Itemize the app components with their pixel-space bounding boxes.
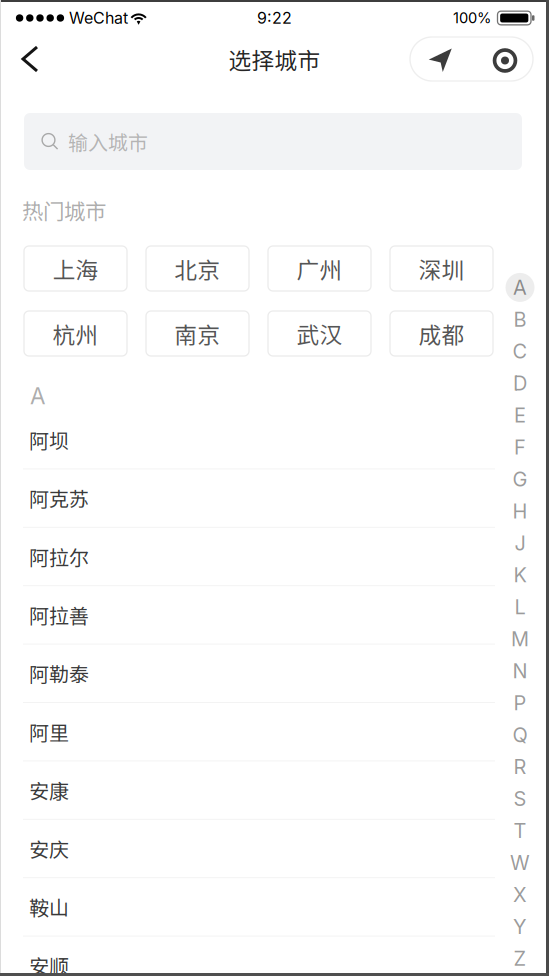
staticText: A bbox=[30, 382, 45, 410]
button[interactable]: 武汉 bbox=[268, 311, 371, 356]
button[interactable]: K bbox=[505, 559, 535, 591]
button[interactable]: 杭州 bbox=[24, 311, 127, 356]
staticText: 选择城市 bbox=[228, 43, 320, 75]
staticText: 安康 bbox=[29, 776, 69, 805]
staticText: A bbox=[513, 275, 527, 299]
staticText: T bbox=[513, 819, 526, 843]
staticText: F bbox=[514, 435, 526, 459]
button[interactable]: 广州 bbox=[268, 246, 371, 291]
staticText: P bbox=[513, 691, 526, 715]
staticText: 阿里 bbox=[29, 717, 69, 746]
button[interactable]: C bbox=[505, 335, 535, 367]
button[interactable]: X bbox=[505, 879, 535, 911]
button[interactable]: More options bbox=[474, 38, 536, 82]
button[interactable]: 阿克苏 bbox=[23, 469, 495, 528]
staticText: L bbox=[514, 595, 525, 619]
staticText: 阿拉尔 bbox=[29, 542, 89, 571]
staticText: K bbox=[513, 563, 526, 587]
staticText: 南京 bbox=[174, 317, 220, 350]
staticText: 武汉 bbox=[296, 317, 342, 350]
staticText: 安庆 bbox=[29, 834, 69, 863]
staticText: 阿勒泰 bbox=[29, 659, 89, 688]
button[interactable]: Z bbox=[505, 943, 535, 975]
button[interactable]: 深圳 bbox=[390, 246, 493, 291]
staticText: 广州 bbox=[296, 252, 342, 285]
staticText: B bbox=[513, 307, 526, 331]
button[interactable]: L bbox=[505, 591, 535, 623]
staticText: 100% bbox=[453, 9, 491, 27]
staticText: N bbox=[512, 659, 527, 683]
staticText: 阿克苏 bbox=[29, 484, 89, 513]
button[interactable]: A bbox=[505, 271, 535, 303]
button[interactable]: 安康 bbox=[23, 761, 495, 820]
button[interactable]: W bbox=[505, 847, 535, 879]
button[interactable]: E bbox=[505, 399, 535, 431]
button[interactable]: G bbox=[505, 463, 535, 495]
button[interactable]: 安顺 bbox=[23, 937, 495, 976]
staticText: W bbox=[510, 851, 530, 875]
button[interactable]: 阿拉尔 bbox=[23, 528, 495, 586]
staticText: G bbox=[512, 467, 527, 491]
staticText: S bbox=[513, 787, 526, 811]
staticText: D bbox=[513, 371, 527, 395]
staticText: 安顺 bbox=[29, 951, 69, 976]
button[interactable]: M bbox=[505, 623, 535, 655]
button[interactable]: 阿里 bbox=[23, 703, 495, 761]
staticText: 阿拉善 bbox=[29, 600, 89, 629]
staticText: 热门城市 bbox=[22, 195, 106, 225]
button[interactable]: B bbox=[505, 303, 535, 335]
staticText: M bbox=[511, 627, 529, 651]
button[interactable]: 上海 bbox=[24, 246, 127, 291]
staticText: Q bbox=[512, 723, 527, 747]
button[interactable]: 鞍山 bbox=[23, 878, 495, 937]
button[interactable]: 输入城市 bbox=[24, 113, 522, 170]
button[interactable]: 南京 bbox=[146, 311, 249, 356]
button[interactable]: Q bbox=[505, 719, 535, 751]
staticText: Z bbox=[513, 946, 526, 971]
staticText: 鞍山 bbox=[29, 892, 69, 921]
button[interactable]: T bbox=[505, 815, 535, 847]
staticText: 杭州 bbox=[52, 317, 98, 350]
staticText: E bbox=[514, 403, 526, 427]
staticText: C bbox=[512, 339, 527, 363]
button[interactable]: N bbox=[505, 655, 535, 687]
button[interactable]: Back bbox=[0, 34, 58, 84]
button[interactable]: S bbox=[505, 783, 535, 815]
staticText: WeChat bbox=[69, 8, 128, 28]
button[interactable]: 成都 bbox=[390, 311, 493, 356]
staticText: 上海 bbox=[52, 252, 98, 285]
staticText: 深圳 bbox=[418, 252, 464, 285]
staticText: 9:22 bbox=[257, 8, 292, 28]
button[interactable]: R bbox=[505, 751, 535, 783]
staticText: 输入城市 bbox=[68, 127, 148, 156]
button[interactable]: 安庆 bbox=[23, 820, 495, 878]
staticText: H bbox=[512, 499, 527, 523]
button[interactable]: Use current location bbox=[410, 37, 471, 81]
button[interactable]: 阿勒泰 bbox=[23, 645, 495, 703]
button[interactable]: 北京 bbox=[146, 246, 249, 291]
staticText: 阿坝 bbox=[29, 425, 69, 454]
button[interactable]: F bbox=[505, 431, 535, 463]
button[interactable]: J bbox=[505, 527, 535, 559]
button[interactable]: D bbox=[505, 367, 535, 399]
staticText: R bbox=[513, 755, 526, 779]
staticText: J bbox=[514, 531, 525, 555]
staticText: 成都 bbox=[418, 317, 464, 350]
staticText: 北京 bbox=[174, 252, 220, 285]
staticText: X bbox=[513, 883, 527, 907]
staticText: Y bbox=[513, 914, 527, 939]
button[interactable]: Y bbox=[505, 911, 535, 943]
button[interactable]: P bbox=[505, 687, 535, 719]
button[interactable]: 阿坝 bbox=[23, 411, 495, 469]
button[interactable]: H bbox=[505, 495, 535, 527]
button[interactable]: 阿拉善 bbox=[23, 586, 495, 645]
